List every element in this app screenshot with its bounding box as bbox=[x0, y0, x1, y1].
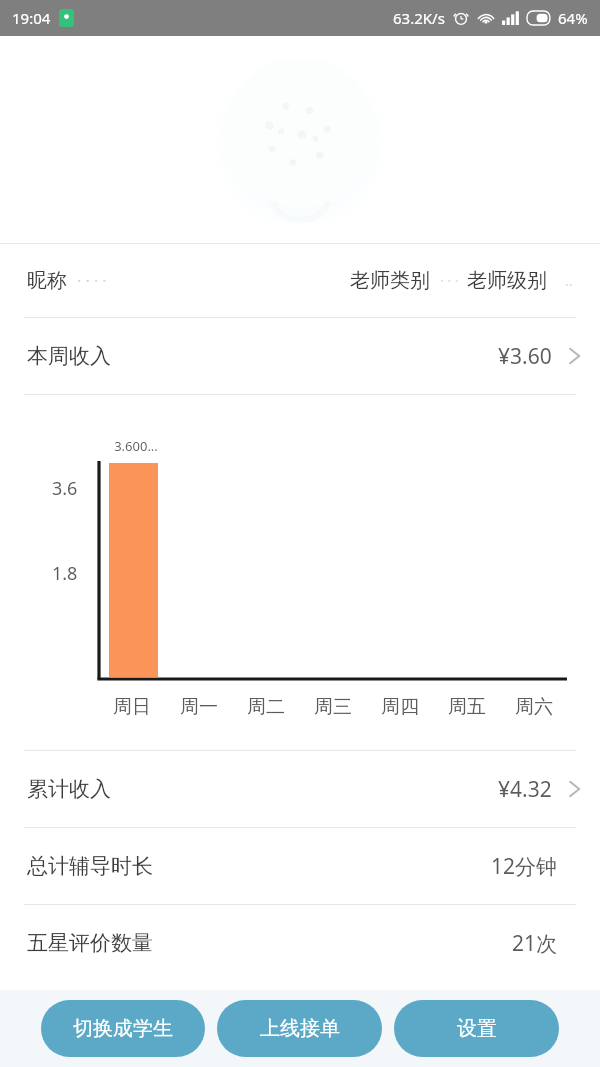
staticText: 63.2K/s bbox=[393, 8, 445, 28]
staticText: 64% bbox=[558, 8, 588, 28]
button[interactable]: 五星评价数量 bbox=[0, 905, 600, 981]
staticText: 累计收入 bbox=[27, 776, 111, 802]
staticText: 昵称 bbox=[27, 268, 67, 293]
staticText: 1.8 bbox=[52, 561, 78, 586]
button[interactable]: 总计辅导时长 bbox=[0, 828, 600, 904]
staticText: 总计辅导时长 bbox=[27, 853, 153, 879]
staticText: 切换成学生 bbox=[73, 1016, 173, 1041]
staticText: 周六 bbox=[515, 695, 553, 719]
button[interactable]: 昵称 bbox=[0, 244, 600, 317]
staticText: 周日 bbox=[113, 695, 151, 719]
staticText: 周五 bbox=[448, 695, 486, 719]
staticText: ¥4.32 bbox=[498, 775, 552, 804]
staticText: · · · bbox=[440, 271, 459, 290]
button[interactable]: 累计收入 bbox=[0, 751, 600, 827]
staticText: 3.6 bbox=[52, 476, 78, 501]
button[interactable]: 上线接单 bbox=[217, 1000, 382, 1057]
staticText: 21次 bbox=[512, 929, 558, 958]
staticText: .. bbox=[565, 271, 573, 290]
staticText: 周二 bbox=[247, 695, 285, 719]
staticText: 五星评价数量 bbox=[27, 930, 153, 956]
staticText: ¥3.60 bbox=[498, 342, 552, 371]
staticText: 设置 bbox=[457, 1016, 497, 1041]
staticText: 周三 bbox=[314, 695, 352, 719]
staticText: 本周收入 bbox=[27, 343, 111, 369]
staticText: · · · · bbox=[77, 270, 107, 292]
staticText: 老师类别 bbox=[350, 268, 430, 293]
button[interactable]: 切换成学生 bbox=[41, 1000, 205, 1057]
staticText: 老师级别 bbox=[467, 268, 547, 293]
staticText: 周四 bbox=[381, 695, 419, 719]
staticText: 上线接单 bbox=[260, 1016, 340, 1041]
button[interactable]: 设置 bbox=[394, 1000, 559, 1057]
staticText: 12分钟 bbox=[491, 852, 558, 881]
staticText: 19:04 bbox=[12, 8, 51, 28]
button[interactable]: 本周收入 bbox=[0, 318, 600, 394]
staticText: 周一 bbox=[180, 695, 218, 719]
staticText: 3.600... bbox=[114, 437, 158, 455]
